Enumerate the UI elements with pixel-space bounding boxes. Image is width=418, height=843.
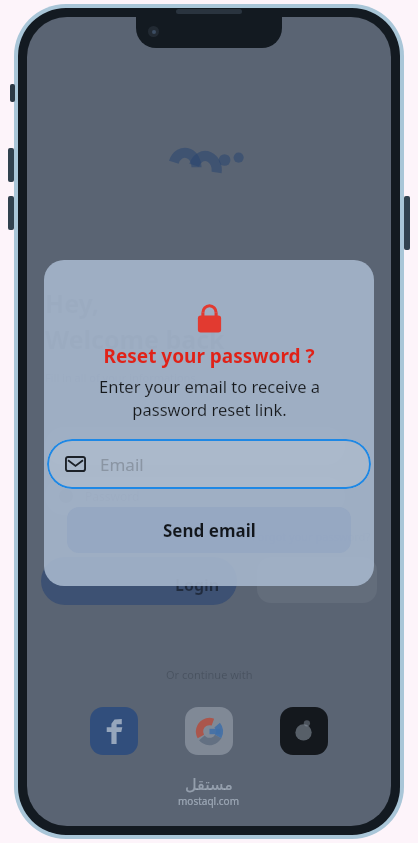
staticText: Or continue with [166, 667, 253, 682]
button[interactable]: Sign in with Google [185, 707, 233, 755]
staticText: Welcome back [45, 322, 225, 356]
staticText: Reset your password ? [103, 343, 315, 369]
staticText: Password [85, 488, 140, 504]
staticText: Enter your email to receive a password r… [99, 375, 320, 421]
staticText: مستقل [185, 775, 233, 794]
button[interactable]: Send email [67, 507, 351, 553]
button[interactable]: Sign in with Apple [280, 707, 328, 755]
button[interactable]: Sign in with Facebook [90, 707, 138, 755]
button[interactable]: Email [47, 439, 371, 489]
staticText: Login [175, 574, 220, 596]
staticText: Forgot your password? [252, 529, 371, 544]
staticText: Send email [163, 519, 256, 542]
staticText: Fill in all of your informations [45, 370, 196, 385]
staticText: mostaql.com [178, 794, 240, 808]
staticText: Email [100, 453, 144, 476]
